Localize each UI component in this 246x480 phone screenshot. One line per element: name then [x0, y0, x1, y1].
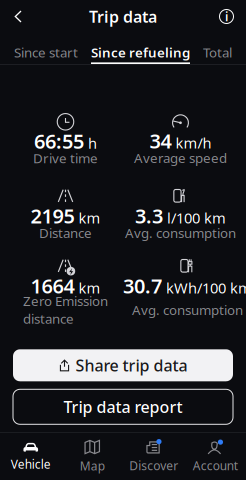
staticText: 30.7 [123, 272, 162, 299]
button[interactable]: Trip data report [13, 389, 233, 424]
staticText: 66:55 [34, 128, 84, 154]
staticText: Drive time [33, 149, 98, 167]
button[interactable]: Discover [123, 433, 184, 480]
button[interactable]: Since start [14, 33, 78, 64]
staticText: Distance [39, 224, 92, 242]
staticText: km [78, 208, 100, 228]
button[interactable]: Total [203, 33, 232, 64]
staticText: Total [203, 43, 232, 61]
staticText: Trip data report [63, 396, 182, 417]
staticText: l/100 km [167, 208, 226, 228]
staticText: 34 [149, 127, 171, 154]
staticText: Share trip data [75, 355, 187, 376]
button[interactable]: Share trip data [13, 349, 233, 381]
staticText: Avg. consumption [132, 301, 243, 319]
staticText: h [88, 133, 97, 153]
staticText: Map [80, 458, 105, 474]
button[interactable]: Since refueling [91, 33, 190, 64]
button[interactable]: Info [207, 1, 246, 32]
staticText: 1664 [30, 272, 74, 299]
staticText: km [78, 278, 100, 298]
staticText: kWh/100 km [166, 278, 246, 298]
staticText: Since refueling [91, 43, 190, 61]
button[interactable]: Vehicle [0, 433, 61, 480]
staticText: Vehicle [11, 456, 51, 472]
staticText: Avg. consumption [125, 224, 236, 242]
staticText: 3.3 [135, 202, 163, 229]
staticText: Since start [14, 43, 78, 61]
button[interactable]: Account [184, 433, 246, 480]
button[interactable]: Map [61, 433, 123, 480]
staticText: Trip data [89, 6, 157, 27]
staticText: Zero Emission distance [23, 292, 108, 327]
staticText: Average speed [134, 149, 227, 167]
button[interactable]: Back [0, 2, 37, 31]
staticText: 2195 [30, 202, 74, 229]
staticText: km/h [175, 133, 211, 153]
staticText: Account [193, 457, 238, 473]
staticText: i [225, 8, 228, 24]
staticText: Discover [129, 457, 178, 473]
